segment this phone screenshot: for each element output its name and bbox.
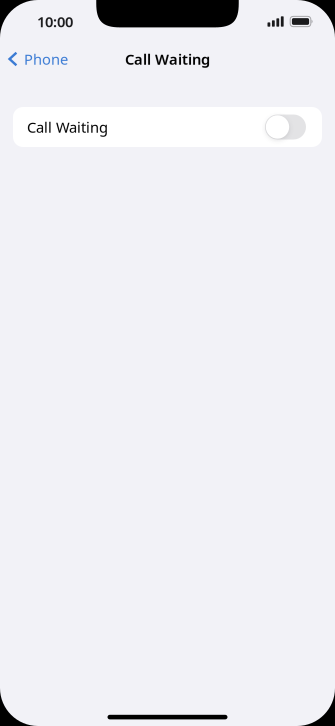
button[interactable]: Call Waiting bbox=[13, 107, 322, 147]
staticText: Call Waiting bbox=[27, 117, 108, 137]
staticText: Call Waiting bbox=[125, 49, 210, 69]
staticText: Phone bbox=[24, 49, 68, 69]
staticText: 10:00 bbox=[37, 12, 73, 31]
button[interactable]: Back to Phone bbox=[0, 44, 78, 74]
